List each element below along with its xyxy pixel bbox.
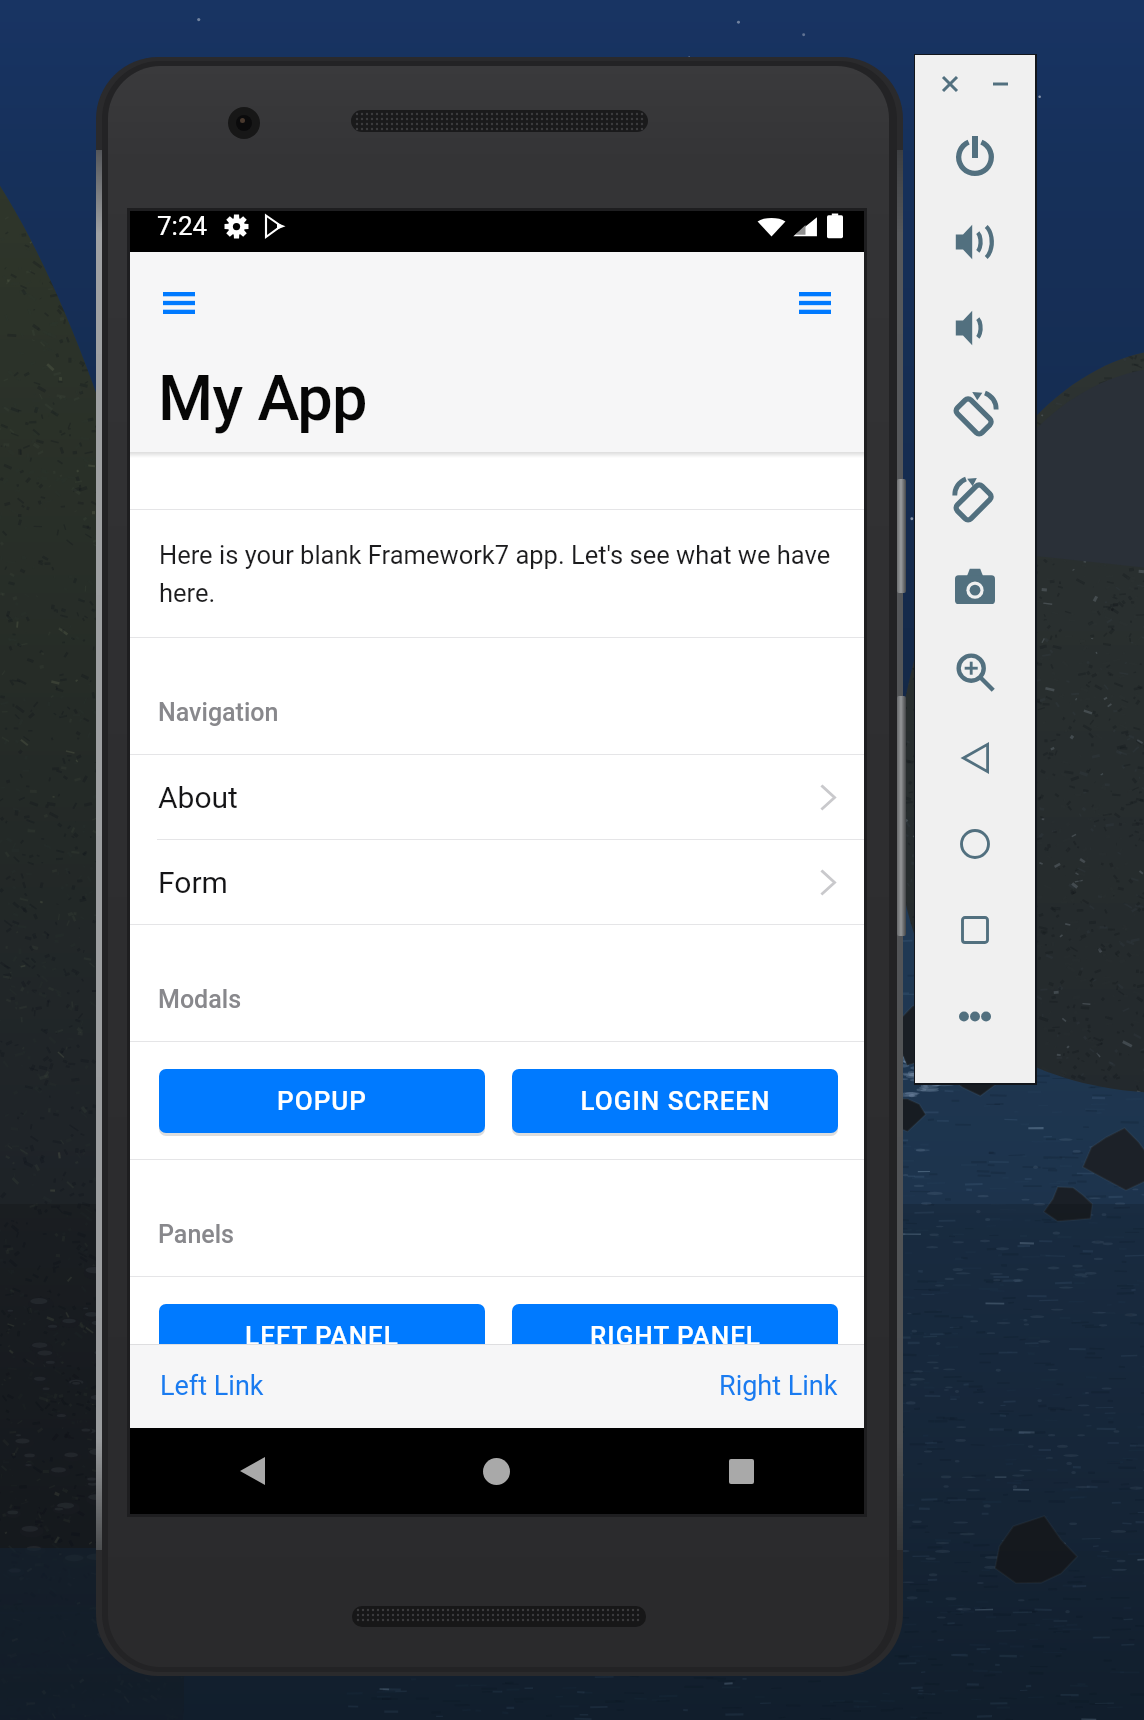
staticText: 7:24 [157,211,208,241]
button[interactable]: Right Link [497,1344,864,1428]
button[interactable]: RIGHT PANEL [512,1304,838,1368]
button[interactable]: Volume down [915,285,1035,371]
button[interactable]: Open left panel menu [153,277,205,329]
staticText: Left Link [160,1370,264,1402]
staticText: Form [158,865,228,900]
button[interactable]: Back [915,715,1035,801]
staticText: LOGIN SCREEN [580,1086,771,1116]
button[interactable]: LEFT PANEL [159,1304,485,1368]
button[interactable]: Form [130,840,864,924]
button[interactable]: LOGIN SCREEN [512,1069,838,1133]
staticText: My App [158,362,367,436]
button[interactable]: Open right panel menu [789,277,841,329]
button[interactable]: Zoom [915,629,1035,715]
button[interactable]: POPUP [159,1069,485,1133]
staticText: Modals [158,985,242,1014]
staticText: About [158,780,238,815]
button[interactable]: Rotate left [915,371,1035,457]
button[interactable]: Minimize [982,66,1018,102]
button[interactable]: Back [130,1428,374,1514]
staticText: POPUP [277,1086,367,1116]
button[interactable]: Power [915,113,1035,199]
button[interactable]: Take screenshot [915,543,1035,629]
button[interactable]: More [915,973,1035,1059]
button[interactable]: About [130,755,864,839]
staticText: LEFT PANEL [245,1321,399,1351]
button[interactable]: Home [915,801,1035,887]
button[interactable]: Home [374,1428,619,1514]
staticText: Navigation [158,698,279,727]
staticText: RIGHT PANEL [590,1321,761,1351]
button[interactable]: Volume up [915,199,1035,285]
button[interactable]: Recent apps [619,1428,864,1514]
staticText: Right Link [719,1370,838,1402]
button[interactable]: Rotate right [915,457,1035,543]
staticText: Panels [158,1220,235,1249]
button[interactable]: Close [932,66,968,102]
button[interactable]: Overview [915,887,1035,973]
staticText: Here is your blank Framework7 app. Let's… [159,540,842,608]
button[interactable]: Left Link [130,1344,497,1428]
